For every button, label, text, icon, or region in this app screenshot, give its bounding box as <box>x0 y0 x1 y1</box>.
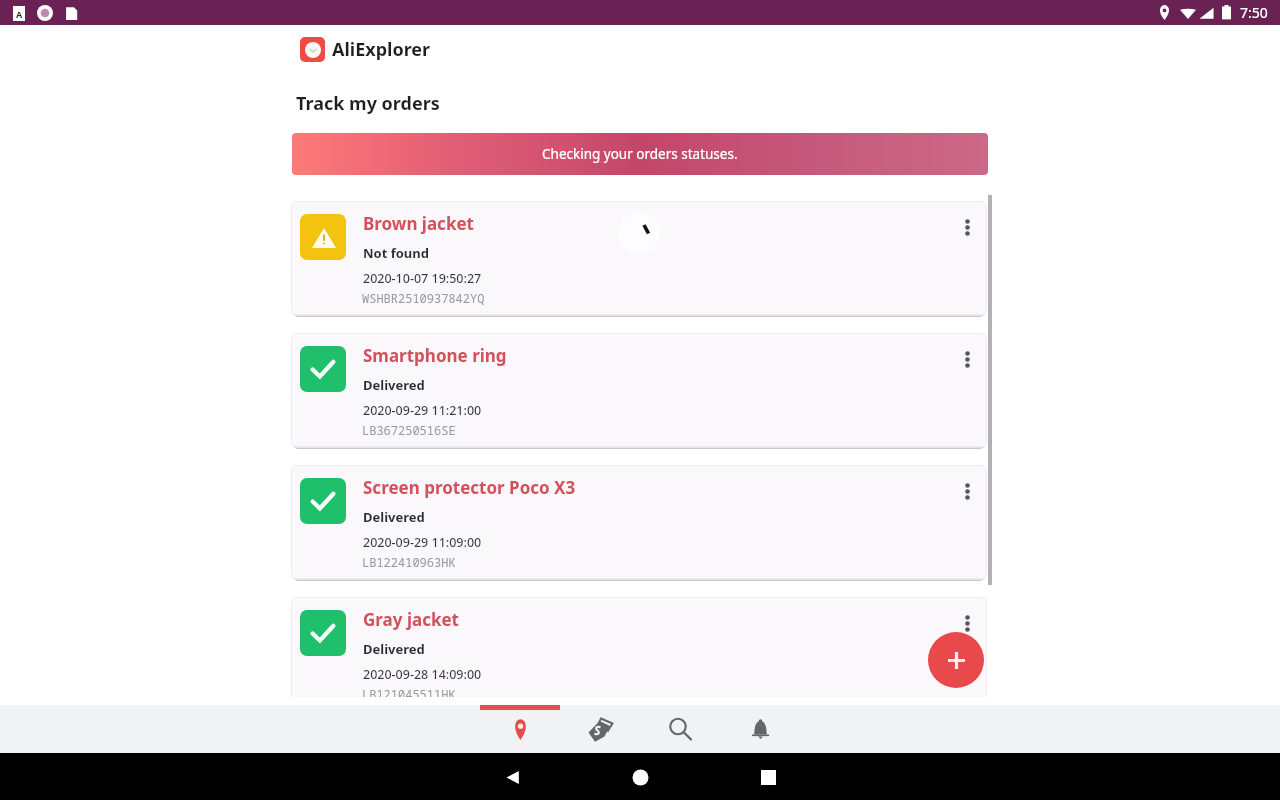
staticText: AliExplorer <box>332 37 431 62</box>
staticText: LB121045511HK <box>362 686 456 697</box>
staticText: LB122410963HK <box>362 554 456 570</box>
staticText: Smartphone ring <box>363 344 507 367</box>
button[interactable]: More options <box>948 471 986 511</box>
staticText: 2020-09-28 14:09:00 <box>363 666 482 683</box>
button[interactable]: More options <box>948 207 986 247</box>
staticText: 2020-09-29 11:21:00 <box>363 402 482 419</box>
button[interactable]: Smartphone ring <box>291 333 987 447</box>
button[interactable]: Notifications <box>720 705 800 753</box>
staticText: Gray jacket <box>363 608 459 631</box>
staticText: Delivered <box>363 376 425 394</box>
staticText: Screen protector Poco X3 <box>363 476 576 499</box>
button[interactable]: Search <box>640 705 720 753</box>
staticText: Not found <box>363 244 429 262</box>
staticText: LB367250516SE <box>362 422 456 438</box>
button[interactable]: More options <box>948 603 986 643</box>
staticText: 7:50 <box>1240 3 1268 22</box>
button[interactable]: Deals <box>560 705 640 753</box>
staticText: Delivered <box>363 508 425 526</box>
staticText: 2020-10-07 19:50:27 <box>363 270 482 287</box>
button[interactable]: Add order <box>928 632 984 688</box>
button[interactable]: Orders <box>480 705 560 753</box>
button[interactable]: Screen protector Poco X3 <box>291 465 987 579</box>
button[interactable]: Brown jacket <box>291 201 987 315</box>
button[interactable]: Gray jacket <box>291 597 987 697</box>
staticText: Track my orders <box>296 91 440 116</box>
staticText: 2020-09-29 11:09:00 <box>363 534 482 551</box>
button[interactable]: Checking your orders statuses. <box>292 133 988 175</box>
staticText: Delivered <box>363 640 425 658</box>
staticText: Brown jacket <box>363 212 474 235</box>
staticText: WSHBR2510937842YQ <box>362 290 485 306</box>
staticText: A <box>16 8 23 20</box>
staticText: Checking your orders statuses. <box>542 145 738 163</box>
button[interactable]: More options <box>948 339 986 379</box>
